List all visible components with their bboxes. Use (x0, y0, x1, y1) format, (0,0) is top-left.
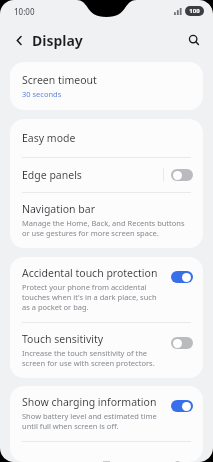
button[interactable]: Touch sensitivity (10, 323, 203, 378)
staticText: Accidental touch protection (22, 266, 158, 280)
staticText: Touch sensitivity (22, 332, 104, 346)
staticText: Easy mode (22, 131, 76, 145)
staticText: Show battery level and estimated time un… (22, 411, 165, 431)
staticText: Manage the Home, Back, and Recents butto… (22, 218, 191, 238)
button[interactable]: Accidental touch protection (10, 257, 203, 322)
staticText: Screen timeout (22, 73, 97, 87)
staticText: 10:00 (14, 6, 35, 17)
button[interactable]: Back (6, 27, 32, 53)
button[interactable]: Easy mode (10, 119, 203, 157)
button[interactable]: Navigation bar (10, 193, 203, 248)
button[interactable]: On (171, 400, 193, 412)
button[interactable]: Off (171, 337, 193, 349)
button[interactable]: Screen saver (10, 442, 203, 462)
staticText: Show charging information (22, 395, 157, 409)
staticText: 100 (189, 7, 200, 15)
button[interactable]: Off (171, 169, 193, 181)
staticText: Edge panels (22, 168, 163, 182)
button[interactable]: On (171, 271, 193, 283)
staticText: Display (32, 31, 83, 50)
staticText: Protect your phone from accidental touch… (22, 282, 165, 312)
staticText: 30 seconds (22, 89, 62, 99)
button[interactable]: Search (181, 27, 207, 53)
button[interactable]: Show charging information (10, 386, 203, 441)
staticText: Navigation bar (22, 202, 96, 216)
staticText: Increase the touch sensitivity of the sc… (22, 348, 165, 368)
button[interactable]: Screen timeout (10, 62, 203, 110)
button[interactable]: Edge panels (10, 158, 203, 192)
